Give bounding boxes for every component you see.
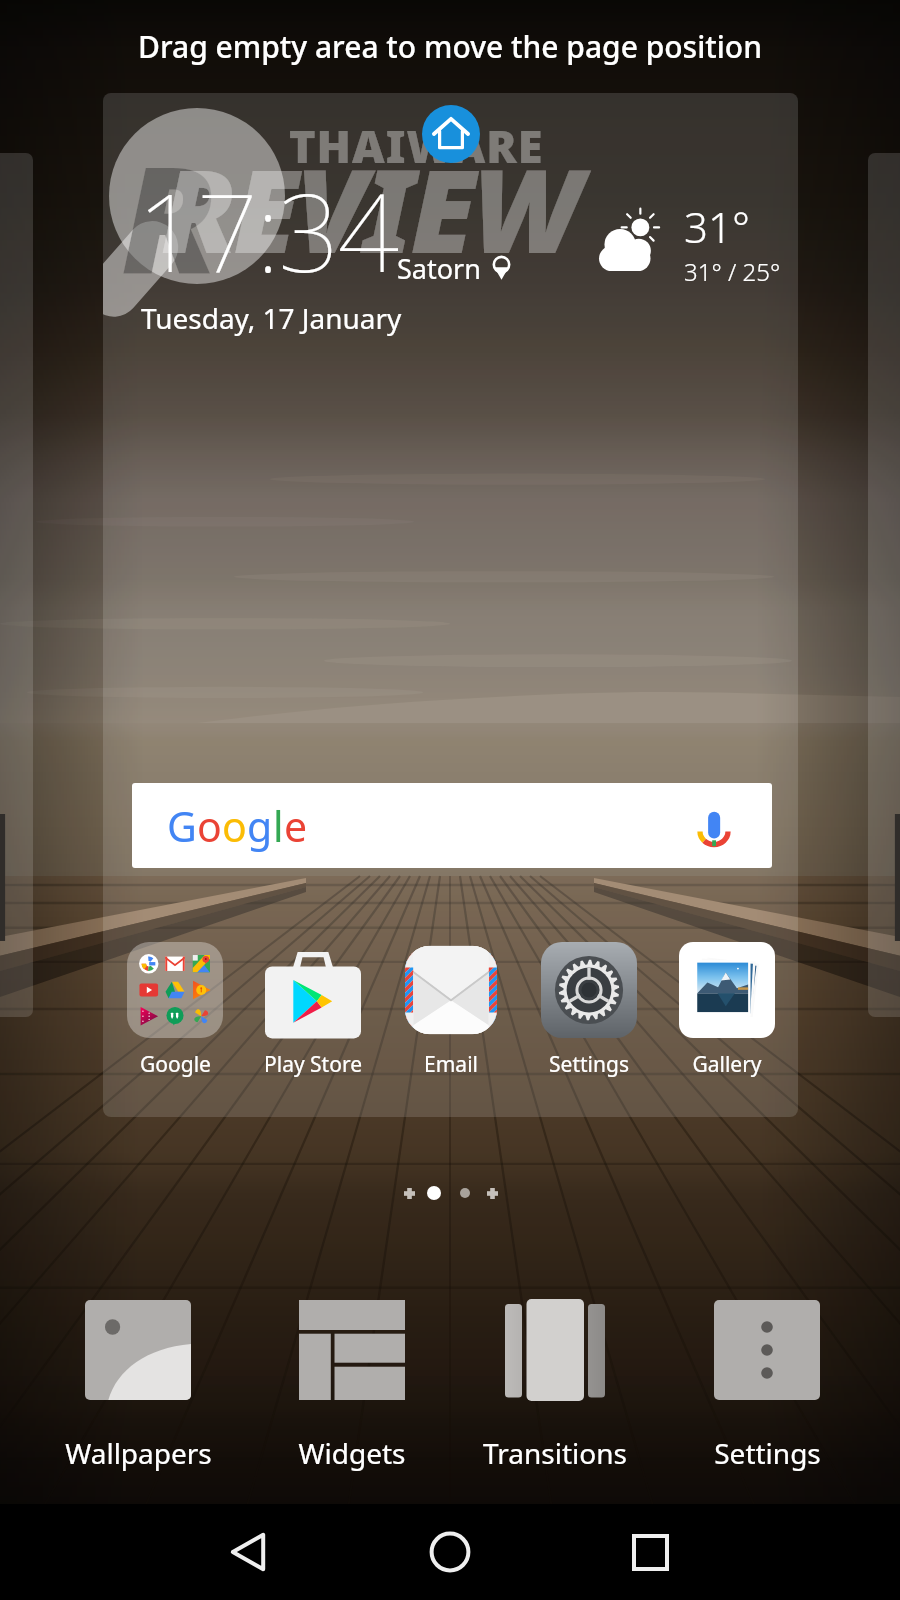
staticText: o [222, 798, 247, 854]
staticText: Gallery [692, 1050, 762, 1079]
button[interactable]: Settings [661, 1297, 873, 1472]
staticText: 31° / 25° [684, 255, 781, 288]
staticText: e [284, 798, 308, 854]
button[interactable]: Back [205, 1507, 295, 1597]
button[interactable]: R [103, 93, 798, 1117]
staticText: THAIWARE [289, 115, 544, 176]
staticText: 31° [684, 198, 750, 255]
staticText: Transitions [483, 1434, 627, 1472]
button[interactable]: Widgets [246, 1297, 458, 1472]
staticText: o [197, 798, 222, 854]
staticText: Google [140, 1050, 211, 1079]
button[interactable]: Wallpapers [32, 1297, 244, 1472]
button[interactable] [460, 1188, 470, 1198]
staticText: Settings [549, 1050, 629, 1079]
button[interactable] [0, 153, 33, 1017]
staticText: REVIEW [161, 129, 579, 287]
button[interactable]: Home [405, 1507, 495, 1597]
staticText: R [121, 115, 218, 317]
staticText: l [273, 798, 284, 854]
button[interactable]: Settings [520, 942, 658, 1079]
button[interactable] [427, 1186, 441, 1200]
button[interactable]: G [132, 783, 772, 868]
button[interactable]: Recents [605, 1507, 695, 1597]
staticText: Drag empty area to move the page positio… [138, 26, 762, 67]
staticText: Tuesday, 17 January [141, 299, 402, 337]
button[interactable]: Default home page [422, 105, 480, 163]
staticText: Play Store [264, 1050, 362, 1079]
button[interactable]: Transitions [449, 1297, 661, 1472]
staticText: 17:34 [137, 157, 398, 304]
staticText: Email [424, 1050, 478, 1079]
button[interactable]: Gallery [658, 942, 796, 1079]
button[interactable]: Play Store [244, 942, 382, 1079]
button[interactable] [868, 153, 900, 1017]
staticText: Satorn [397, 250, 481, 287]
staticText: Settings [714, 1434, 821, 1472]
staticText: G [167, 798, 197, 854]
button[interactable]: Voice search [686, 798, 742, 854]
staticText: g [247, 798, 273, 854]
button[interactable]: Email [382, 942, 520, 1079]
button[interactable]: Google [106, 942, 244, 1079]
staticText: Widgets [298, 1434, 406, 1472]
staticText: Wallpapers [65, 1434, 212, 1472]
button[interactable]: Add page [481, 1182, 503, 1204]
button[interactable]: Add page [398, 1182, 420, 1204]
